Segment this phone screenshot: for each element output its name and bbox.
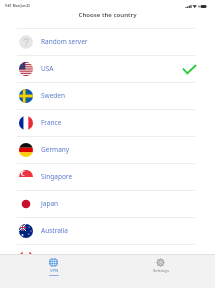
button[interactable]: Canada bbox=[0, 245, 215, 272]
button[interactable]: Settings bbox=[107, 255, 215, 288]
button[interactable]: USA bbox=[0, 56, 215, 83]
staticText: Canada bbox=[41, 253, 65, 262]
staticText: Settings bbox=[153, 268, 169, 274]
staticText: Singapore bbox=[41, 172, 73, 181]
button[interactable]: France bbox=[0, 110, 215, 137]
button[interactable]: Sweden bbox=[0, 83, 215, 110]
button[interactable]: Singapore bbox=[0, 164, 215, 191]
staticText: VPN bbox=[50, 268, 59, 274]
staticText: Sweden bbox=[41, 91, 66, 100]
staticText: Australia bbox=[41, 226, 68, 235]
staticText: Choose the country bbox=[78, 10, 137, 18]
button[interactable]: Germany bbox=[0, 137, 215, 164]
button[interactable]: Japan bbox=[0, 191, 215, 218]
button[interactable]: VPN bbox=[0, 255, 107, 288]
staticText: Random server bbox=[41, 37, 88, 46]
staticText: 9:41 Mon Jun 23 bbox=[5, 4, 30, 8]
staticText: USA bbox=[41, 64, 54, 73]
staticText: Germany bbox=[41, 145, 70, 154]
button[interactable]: Australia bbox=[0, 218, 215, 245]
staticText: Japan bbox=[41, 199, 59, 208]
staticText: France bbox=[41, 118, 62, 127]
button[interactable]: Random server bbox=[0, 29, 215, 56]
